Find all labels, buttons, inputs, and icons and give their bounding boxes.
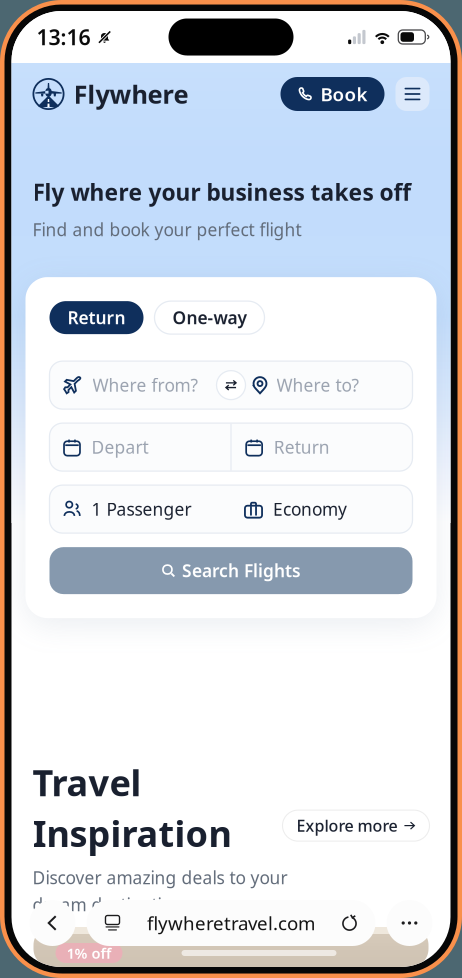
staticText: 13:16 bbox=[36, 23, 90, 51]
button[interactable]: Back bbox=[29, 900, 75, 946]
button[interactable]: Explore more bbox=[282, 810, 429, 841]
staticText: Explore more bbox=[296, 815, 397, 836]
staticText: 1 Passenger bbox=[91, 498, 191, 521]
button[interactable]: Menu bbox=[395, 77, 429, 111]
staticText: Fly where your business takes off bbox=[32, 177, 410, 207]
staticText: One-way bbox=[172, 306, 246, 329]
staticText: Discover amazing deals to your bbox=[32, 866, 287, 889]
staticText: Where to? bbox=[276, 374, 359, 397]
button[interactable]: Depart bbox=[49, 436, 230, 459]
button[interactable]: Return bbox=[232, 436, 412, 459]
staticText: Depart bbox=[91, 436, 148, 459]
button[interactable]: Search Flights bbox=[49, 547, 412, 594]
button[interactable]: Book bbox=[280, 77, 384, 111]
staticText: Find and book your perfect flight bbox=[32, 218, 301, 241]
staticText: Economy bbox=[273, 498, 347, 521]
staticText: dream destinations bbox=[32, 893, 190, 916]
button[interactable]: Reload bbox=[331, 901, 367, 945]
button[interactable]: Return bbox=[49, 301, 143, 334]
staticText: Where from? bbox=[92, 374, 198, 397]
staticText: Return bbox=[67, 306, 125, 329]
staticText: flywheretravel.com bbox=[147, 911, 315, 935]
button[interactable]: Economy bbox=[231, 498, 412, 521]
button[interactable]: One-way bbox=[154, 301, 264, 334]
staticText: Return bbox=[274, 436, 330, 459]
button[interactable]: 1 Passenger bbox=[49, 498, 231, 521]
button[interactable]: More bbox=[386, 900, 432, 946]
staticText: Search Flights bbox=[182, 559, 301, 582]
button[interactable]: Where to? bbox=[245, 374, 412, 397]
staticText: Travel bbox=[32, 758, 141, 806]
staticText: 1% off bbox=[66, 943, 111, 963]
button[interactable]: Where from? bbox=[49, 374, 216, 397]
staticText: Inspiration bbox=[32, 809, 231, 857]
staticText: Book bbox=[320, 82, 367, 106]
staticText: Flywhere bbox=[73, 77, 188, 111]
button[interactable]: Page settings bbox=[94, 901, 130, 945]
button[interactable]: Swap origin and destination bbox=[216, 371, 245, 400]
